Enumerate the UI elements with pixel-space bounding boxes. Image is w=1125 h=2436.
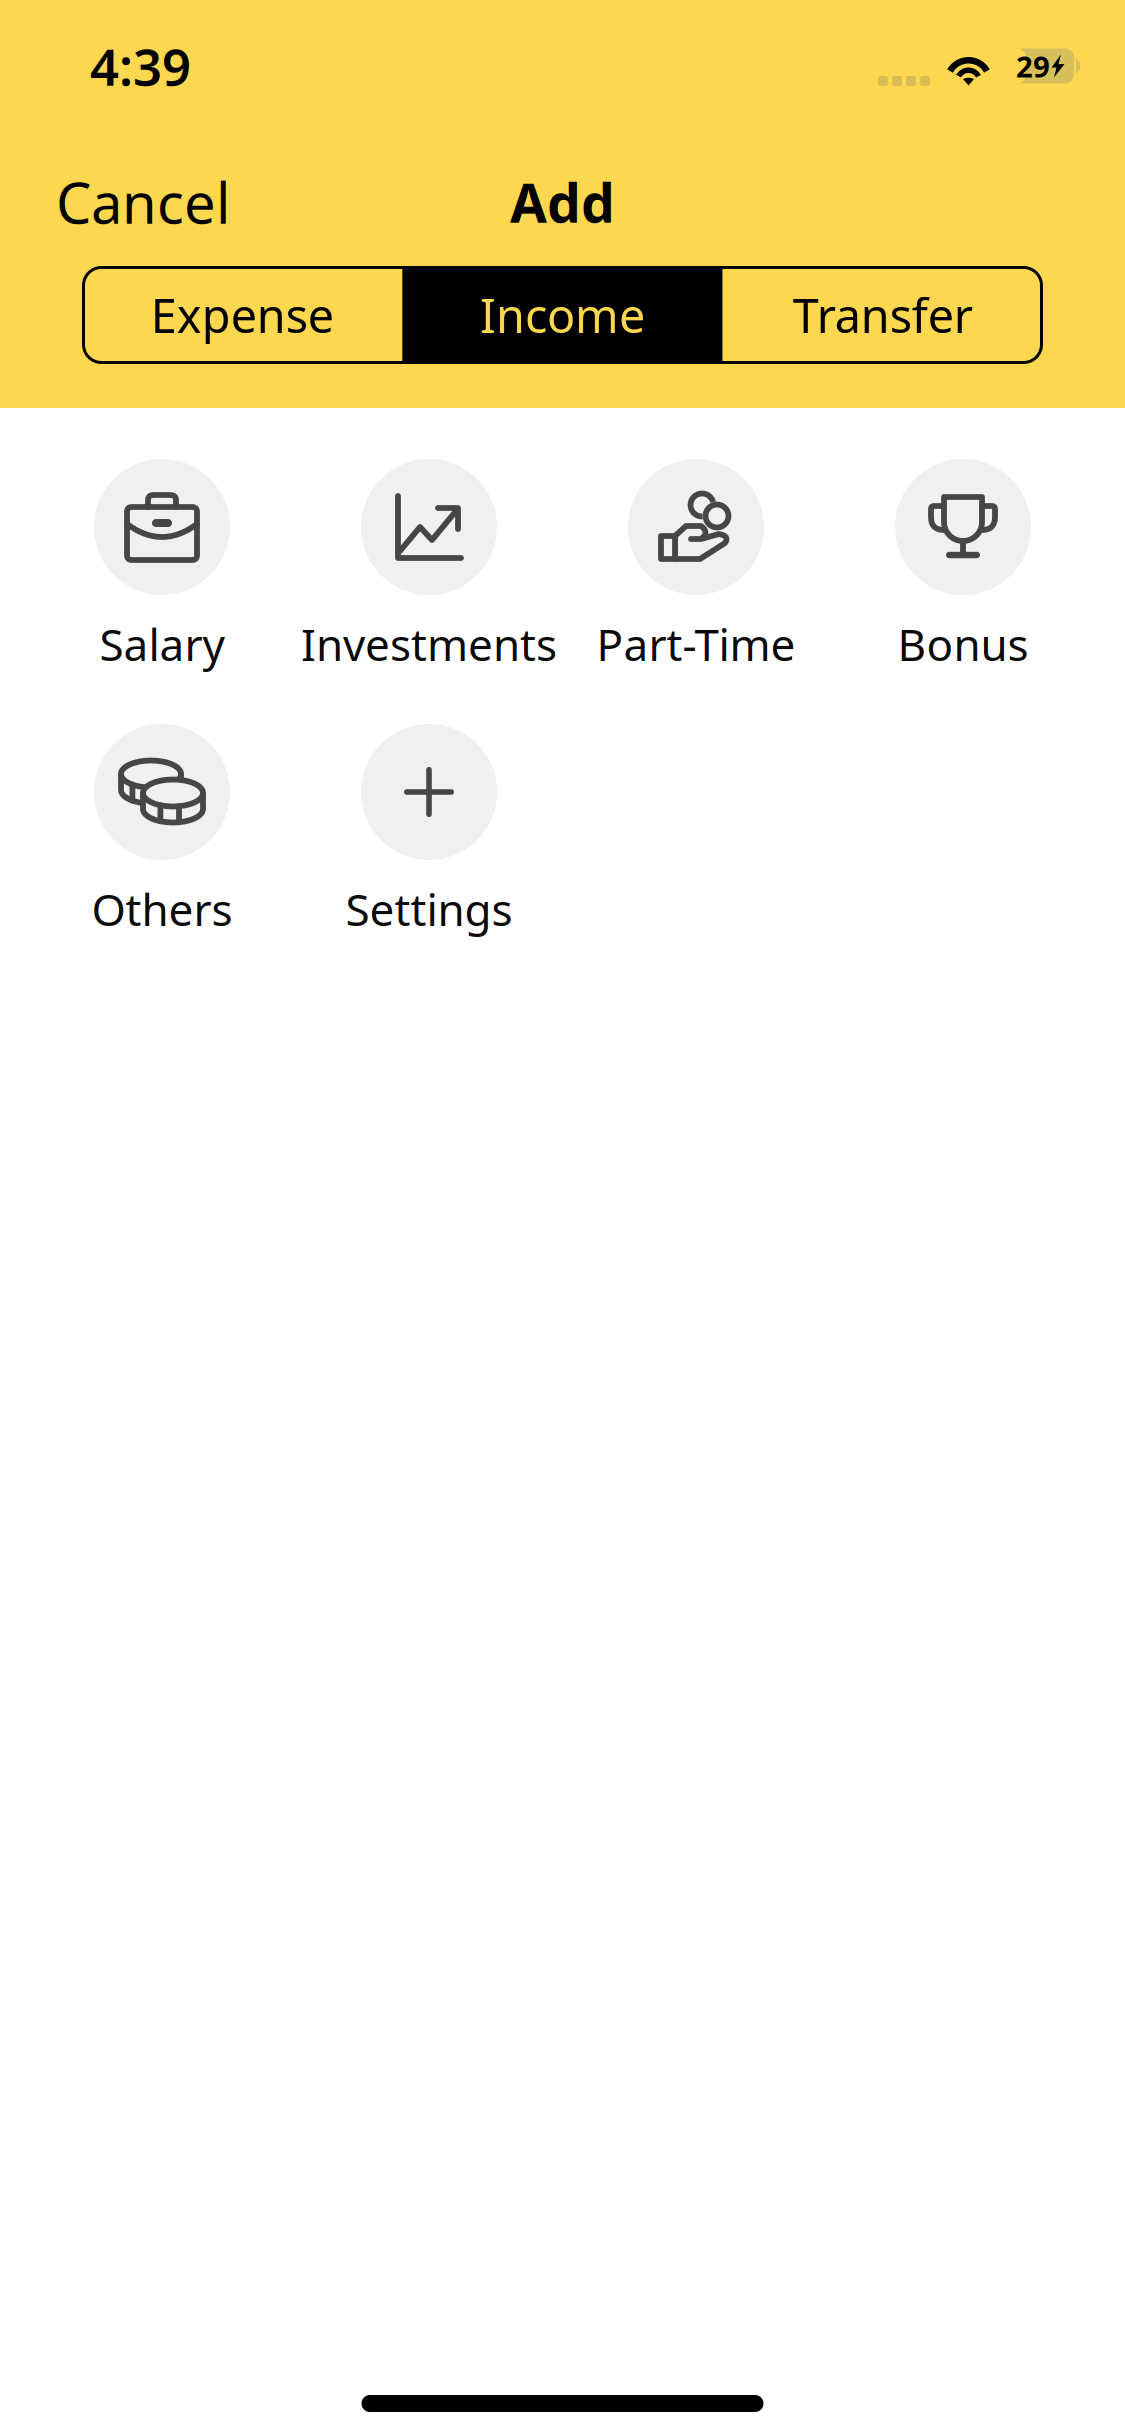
staticText: Add: [510, 167, 615, 237]
staticText: Bonus: [897, 615, 1028, 673]
button[interactable]: Income: [402, 266, 723, 364]
button[interactable]: Bonus: [829, 459, 1096, 665]
button[interactable]: Settings: [295, 724, 562, 930]
staticText: Income: [480, 284, 645, 346]
button[interactable]: Transfer: [723, 266, 1043, 364]
staticText: Part-Time: [596, 615, 795, 673]
staticText: Investments: [301, 615, 557, 673]
staticText: Expense: [151, 284, 334, 346]
button[interactable]: Cancel: [56, 162, 230, 242]
button[interactable]: Expense: [82, 266, 402, 364]
button[interactable]: Salary: [28, 459, 295, 665]
staticText: Settings: [345, 880, 512, 938]
staticText: Transfer: [793, 284, 973, 346]
button[interactable]: Part-Time: [562, 459, 829, 665]
button[interactable]: Investments: [295, 459, 562, 665]
staticText: Salary: [99, 615, 224, 673]
button[interactable]: Others: [28, 724, 295, 930]
staticText: 4:39: [90, 32, 191, 100]
staticText: Others: [91, 880, 232, 938]
staticText: 29: [1016, 46, 1050, 85]
staticText: Cancel: [56, 165, 230, 239]
